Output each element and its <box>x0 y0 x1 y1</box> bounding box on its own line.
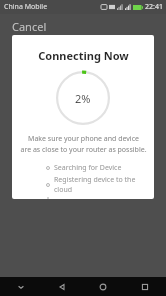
button[interactable]: Back <box>41 277 82 296</box>
button[interactable]: Hide <box>0 277 41 296</box>
staticText: Registering device to the cloud <box>54 175 154 195</box>
button[interactable]: Cancel <box>8 16 51 37</box>
button[interactable]: Home <box>82 277 124 296</box>
staticText: Connecting Now <box>38 48 129 63</box>
button[interactable]: Recent apps <box>124 277 166 296</box>
staticText: China Mobile <box>4 2 48 12</box>
staticText: 2% <box>75 91 91 106</box>
staticText: Searching for Device <box>54 163 122 173</box>
staticText: 22:41 <box>145 2 163 12</box>
staticText: Make sure your phone and device are as c… <box>20 134 147 154</box>
staticText: Cancel <box>12 19 47 34</box>
